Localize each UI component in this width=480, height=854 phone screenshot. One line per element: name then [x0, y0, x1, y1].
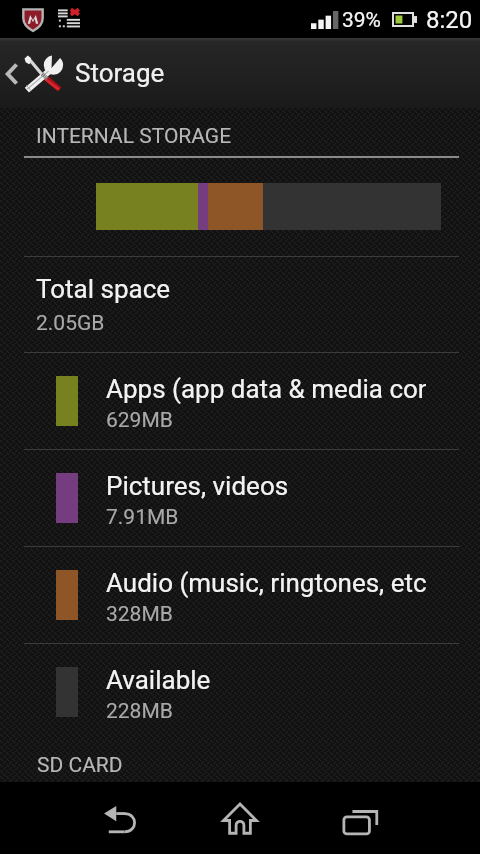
- staticText: Total space: [36, 274, 171, 304]
- button[interactable]: Back: [71, 782, 171, 854]
- staticText: 629MB: [106, 408, 173, 433]
- staticText: SD CARD: [37, 753, 123, 778]
- staticText: 8:20: [426, 6, 473, 34]
- staticText: 2.05GB: [36, 311, 105, 336]
- button[interactable]: Navigate up: [0, 38, 69, 108]
- staticText: Storage: [75, 58, 165, 88]
- staticText: 228MB: [106, 699, 173, 724]
- button[interactable]: Recent apps: [310, 782, 410, 854]
- staticText: Audio (music, ringtones, etc): [106, 568, 426, 598]
- button[interactable]: Pictures, videos: [0, 450, 480, 546]
- staticText: Pictures, videos: [106, 471, 289, 501]
- button[interactable]: Home: [190, 782, 290, 854]
- staticText: 7.91MB: [106, 505, 179, 530]
- button[interactable]: Apps (app data & media content): [0, 353, 480, 449]
- staticText: 39%: [342, 8, 381, 33]
- button[interactable]: Audio (music, ringtones, etc): [0, 547, 480, 643]
- staticText: 328MB: [106, 602, 173, 627]
- button[interactable]: Available: [0, 644, 480, 740]
- staticText: INTERNAL STORAGE: [36, 124, 232, 149]
- staticText: Available: [106, 665, 211, 695]
- button[interactable]: Total space: [0, 257, 480, 352]
- staticText: Apps (app data & media content): [106, 374, 426, 404]
